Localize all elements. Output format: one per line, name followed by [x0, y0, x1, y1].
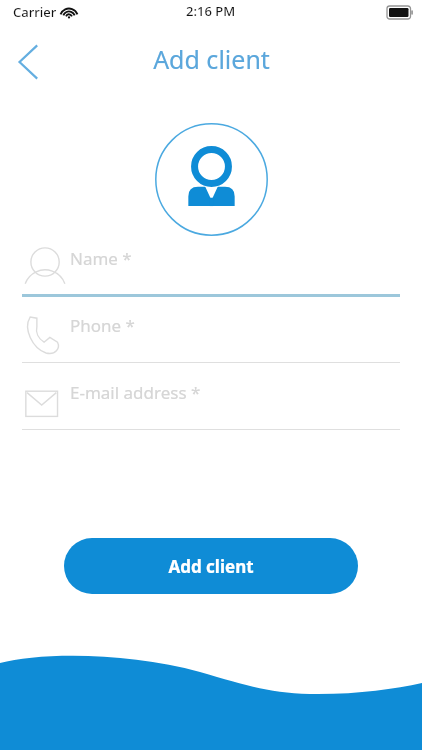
button[interactable]: Name *	[0, 236, 422, 298]
staticText: Add client	[168, 555, 254, 578]
staticText: Name *	[70, 247, 132, 270]
staticText: Carrier	[13, 3, 57, 21]
button[interactable]: Phone *	[0, 303, 422, 365]
button[interactable]: Add client	[64, 538, 358, 594]
button[interactable]: E-mail address *	[0, 370, 422, 432]
staticText: 2:16 PM	[186, 2, 236, 20]
button[interactable]: Back	[6, 36, 58, 88]
staticText: Phone *	[70, 314, 135, 337]
staticText: E-mail address *	[70, 381, 201, 404]
staticText: Add client	[153, 42, 270, 76]
